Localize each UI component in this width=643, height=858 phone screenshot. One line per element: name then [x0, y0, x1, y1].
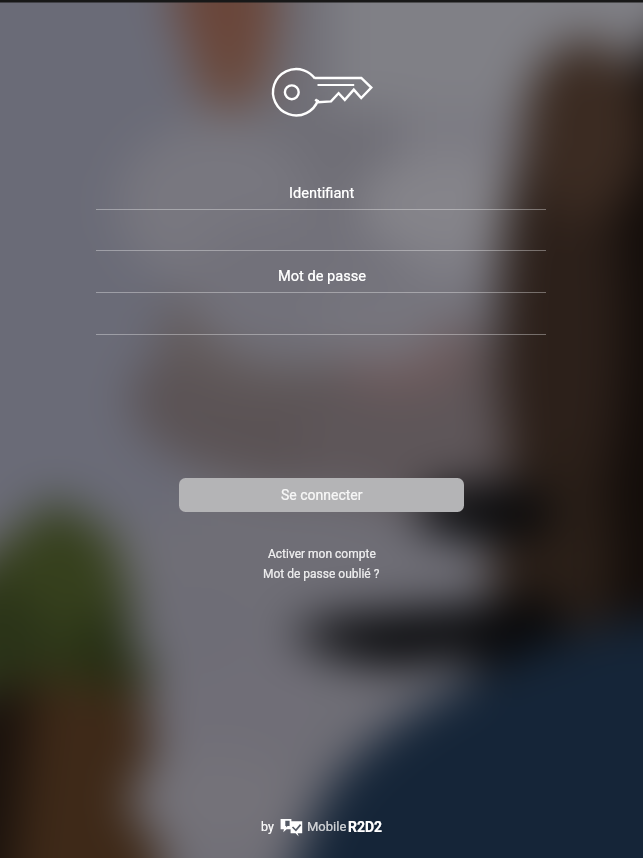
button[interactable]: Se connecter — [179, 478, 464, 512]
button[interactable]: Activer mon compte — [268, 547, 376, 561]
staticText: Activer mon compte — [268, 547, 376, 561]
staticText: Se connecter — [281, 487, 363, 503]
staticText: by — [261, 819, 274, 834]
button[interactable]: by — [255, 812, 391, 840]
staticText: Mobile — [307, 819, 347, 834]
staticText: R2D2 — [348, 819, 383, 835]
staticText: Mot de passe oublié ? — [263, 567, 380, 581]
staticText: Mot de passe — [278, 267, 366, 284]
button[interactable]: Mot de passe oublié ? — [263, 567, 380, 581]
staticText: Identifiant — [289, 184, 355, 201]
